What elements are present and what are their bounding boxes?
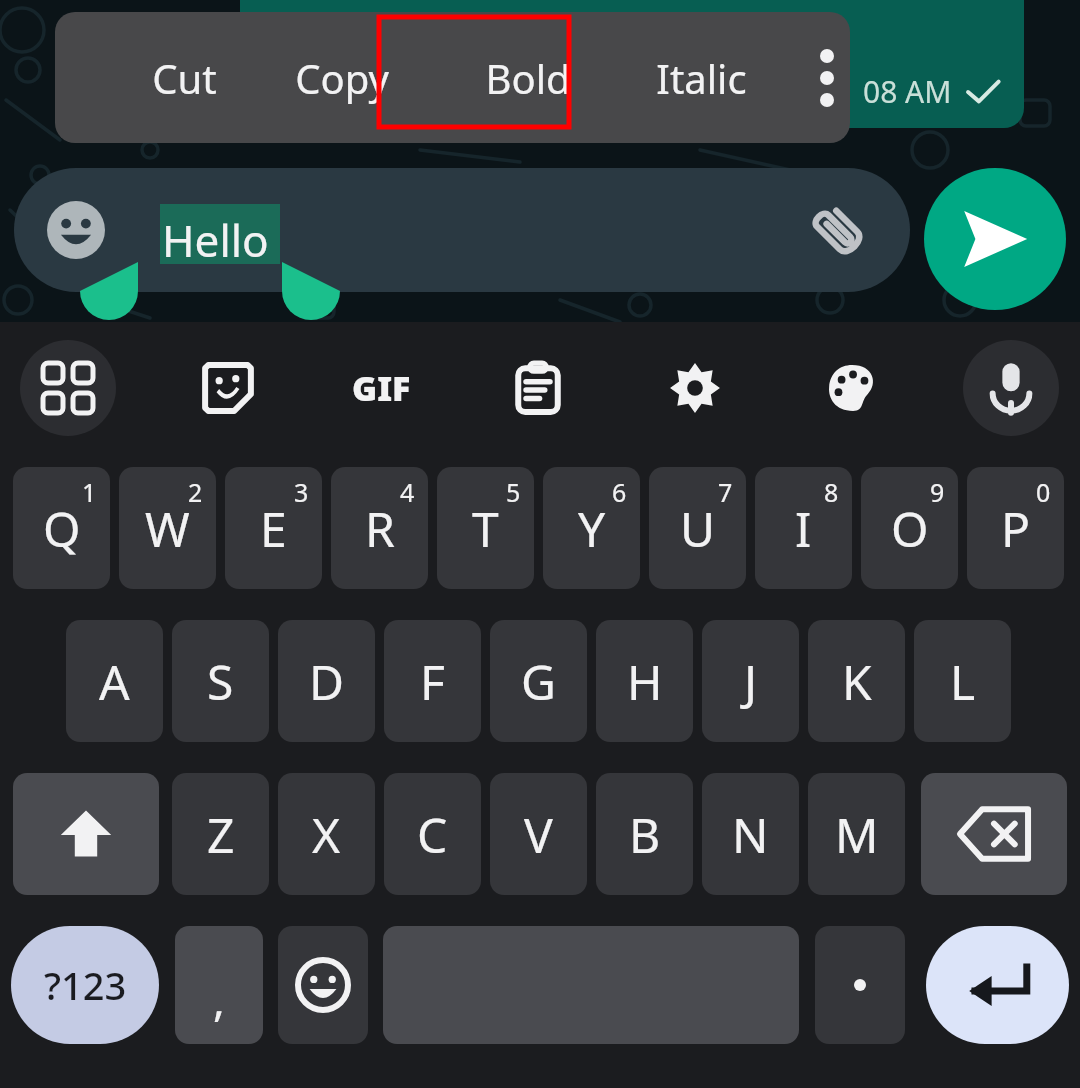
button[interactable]: Stickers	[180, 340, 276, 436]
staticText: ?123	[44, 959, 127, 1011]
staticText: N	[732, 802, 769, 867]
button[interactable]: More options	[790, 12, 850, 143]
button[interactable]: X	[278, 773, 375, 895]
button[interactable]: W	[119, 467, 216, 589]
staticText: D	[309, 649, 345, 714]
button[interactable]: Italic	[631, 12, 771, 143]
button[interactable]: GIF	[333, 340, 429, 436]
staticText: 2	[188, 475, 203, 509]
staticText: C	[417, 802, 448, 867]
button[interactable]: E	[225, 467, 322, 589]
button[interactable]: Settings	[647, 340, 743, 436]
button[interactable]: I	[755, 467, 852, 589]
button[interactable]: F	[384, 620, 481, 742]
staticText: Q	[43, 496, 81, 561]
staticText: J	[744, 649, 758, 714]
button[interactable]: B	[596, 773, 693, 895]
staticText: 7	[718, 475, 733, 509]
staticText: X	[312, 802, 341, 867]
button[interactable]: H	[596, 620, 693, 742]
staticText: Hello	[162, 210, 269, 270]
staticText: 5	[506, 475, 521, 509]
button[interactable]: Comma	[175, 926, 263, 1044]
staticText: Y	[578, 496, 606, 561]
staticText: O	[891, 496, 929, 561]
staticText: H	[627, 649, 663, 714]
staticText: 6	[612, 475, 627, 509]
staticText: G	[521, 649, 556, 714]
button[interactable]: O	[861, 467, 958, 589]
button[interactable]: Cut	[117, 12, 252, 143]
button[interactable]: Y	[543, 467, 640, 589]
button[interactable]: U	[649, 467, 746, 589]
staticText: 1	[82, 475, 97, 509]
button[interactable]: G	[490, 620, 587, 742]
staticText: W	[145, 496, 190, 561]
staticText: 0	[1036, 475, 1051, 509]
button[interactable]: T	[437, 467, 534, 589]
button[interactable]: Copy	[267, 12, 417, 143]
button[interactable]: Clipboard	[490, 340, 586, 436]
button[interactable]: A	[66, 620, 163, 742]
button[interactable]: Z	[172, 773, 269, 895]
staticText: 8	[824, 475, 839, 509]
button[interactable]: C	[384, 773, 481, 895]
staticText: L	[950, 649, 976, 714]
staticText: Copy	[295, 51, 389, 105]
staticText: ,	[213, 969, 225, 1029]
staticText: E	[260, 496, 287, 561]
button[interactable]: J	[702, 620, 799, 742]
button[interactable]: Emoji	[14, 168, 910, 292]
button[interactable]: V	[490, 773, 587, 895]
button[interactable]: L	[914, 620, 1011, 742]
staticText: V	[524, 802, 553, 867]
button[interactable]: Emoji	[44, 198, 108, 262]
button[interactable]: ?123	[11, 926, 159, 1044]
staticText: P	[1001, 496, 1031, 561]
staticText: Cut	[152, 51, 217, 105]
button[interactable]: Voice input	[963, 340, 1059, 436]
staticText: U	[680, 496, 716, 561]
button[interactable]: P	[967, 467, 1064, 589]
staticText: T	[472, 496, 499, 561]
staticText: 3	[294, 475, 309, 509]
staticText: R	[365, 496, 395, 561]
button[interactable]: Theme	[804, 340, 900, 436]
button[interactable]: S	[172, 620, 269, 742]
button[interactable]: Q	[13, 467, 110, 589]
button[interactable]: Shift	[13, 773, 159, 895]
button[interactable]: N	[702, 773, 799, 895]
button[interactable]: Period	[815, 926, 905, 1044]
button[interactable]: K	[808, 620, 905, 742]
staticText: Bold	[485, 51, 571, 105]
staticText: A	[99, 649, 130, 714]
button[interactable]: Send	[924, 168, 1066, 310]
staticText: B	[629, 802, 661, 867]
button[interactable]: M	[808, 773, 905, 895]
button[interactable]: Emoji keyboard	[278, 926, 368, 1044]
button[interactable]: Enter	[926, 926, 1069, 1044]
button[interactable]: Toolbox	[20, 340, 116, 436]
staticText: K	[842, 649, 872, 714]
button[interactable]: Bold	[436, 19, 619, 136]
staticText: Italic	[656, 51, 747, 105]
staticText: S	[207, 649, 234, 714]
button[interactable]: R	[331, 467, 428, 589]
staticText: I	[795, 496, 812, 561]
staticText: F	[420, 649, 445, 714]
staticText: 9	[930, 475, 945, 509]
staticText: 4	[400, 475, 415, 509]
button[interactable]: D	[278, 620, 375, 742]
staticText: GIF	[352, 365, 411, 411]
staticText: Z	[207, 802, 235, 867]
button[interactable]: Attach	[802, 194, 874, 266]
staticText: M	[835, 802, 879, 867]
staticText: 08 AM	[863, 71, 952, 112]
button[interactable]: Backspace	[921, 773, 1067, 895]
